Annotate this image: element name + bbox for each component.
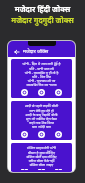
staticText: मजेदार जोक्स bbox=[23, 48, 49, 55]
button[interactable]: WhatsApp bbox=[55, 89, 62, 96]
button[interactable]: पत्नी - दिल में आग लगी हुई है पति - पानी… bbox=[11, 59, 72, 98]
button[interactable]: Share bbox=[21, 131, 28, 138]
button[interactable]: Share bbox=[21, 89, 28, 96]
button[interactable]: Share bbox=[21, 169, 28, 170]
staticText: मजेदार गुदगुदी जोक्स bbox=[0, 15, 85, 25]
button[interactable]: Copy bbox=[38, 89, 45, 96]
staticText: डॉक्टर साहब मेरी पत्नी बीमार है कुछ कीजि… bbox=[11, 145, 72, 167]
staticText: शादी से पहले लड़की बोली जान मेरी तुम मेर… bbox=[11, 103, 72, 129]
button[interactable]: WhatsApp bbox=[55, 131, 62, 138]
button[interactable]: WhatsApp bbox=[55, 169, 62, 170]
button[interactable]: डॉक्टर साहब मेरी पत्नी बीमार है कुछ कीजि… bbox=[11, 143, 72, 172]
button[interactable]: शादी से पहले लड़की बोली जान मेरी तुम मेर… bbox=[11, 101, 72, 140]
button[interactable]: Back bbox=[14, 49, 20, 55]
staticText: मजेदार हिंदी जोक्स bbox=[0, 4, 85, 14]
button[interactable]: Copy bbox=[38, 131, 45, 138]
button[interactable]: Copy bbox=[38, 169, 45, 170]
staticText: पत्नी - दिल में आग लगी हुई है पति - पानी… bbox=[11, 61, 72, 87]
